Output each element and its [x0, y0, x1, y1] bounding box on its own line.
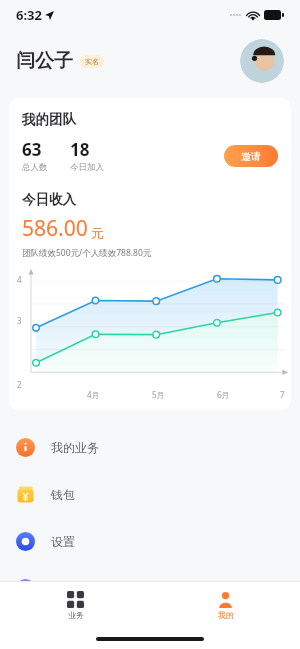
button[interactable]: 业务 — [49, 588, 102, 623]
staticText: 586.00 — [22, 214, 88, 243]
staticText: 邀请 — [241, 150, 261, 163]
staticText: 帮助与反馈 — [51, 581, 111, 596]
staticText: 闫公子 — [16, 49, 73, 73]
staticText: 实名 — [85, 57, 99, 66]
staticText: 业务 — [68, 610, 84, 620]
staticText: 2 — [17, 379, 22, 390]
staticText: 今日加入 — [70, 162, 104, 173]
staticText: 63 — [22, 138, 42, 161]
button[interactable]: Profile avatar — [240, 39, 284, 83]
staticText: 6月 — [217, 389, 230, 400]
button[interactable]: 邀请 — [224, 145, 278, 167]
button[interactable]: 钱包 — [0, 471, 300, 518]
staticText: 钱包 — [51, 487, 75, 502]
staticText: 6:32 — [16, 6, 42, 24]
staticText: 7 — [280, 389, 285, 400]
button[interactable]: 设置 — [0, 518, 300, 565]
staticText: 总人数 — [22, 162, 48, 173]
button[interactable]: 帮助与反馈 — [0, 565, 300, 612]
staticText: 今日收入 — [22, 191, 76, 208]
button[interactable]: 我的 — [199, 588, 252, 623]
staticText: 设置 — [51, 534, 75, 549]
button[interactable]: 我的业务 — [0, 424, 300, 471]
staticText: 5月 — [152, 389, 165, 400]
staticText: 4月 — [87, 389, 100, 400]
staticText: 我的团队 — [22, 111, 76, 128]
staticText: 团队绩效500元/个人绩效788.80元 — [22, 247, 152, 259]
staticText: 4 — [17, 274, 22, 285]
staticText: 我的 — [218, 610, 234, 620]
button[interactable]: 实名 — [80, 55, 104, 68]
staticText: 3 — [17, 315, 22, 326]
staticText: 18 — [70, 138, 90, 161]
staticText: 元 — [91, 225, 104, 241]
staticText: 我的业务 — [51, 440, 99, 455]
